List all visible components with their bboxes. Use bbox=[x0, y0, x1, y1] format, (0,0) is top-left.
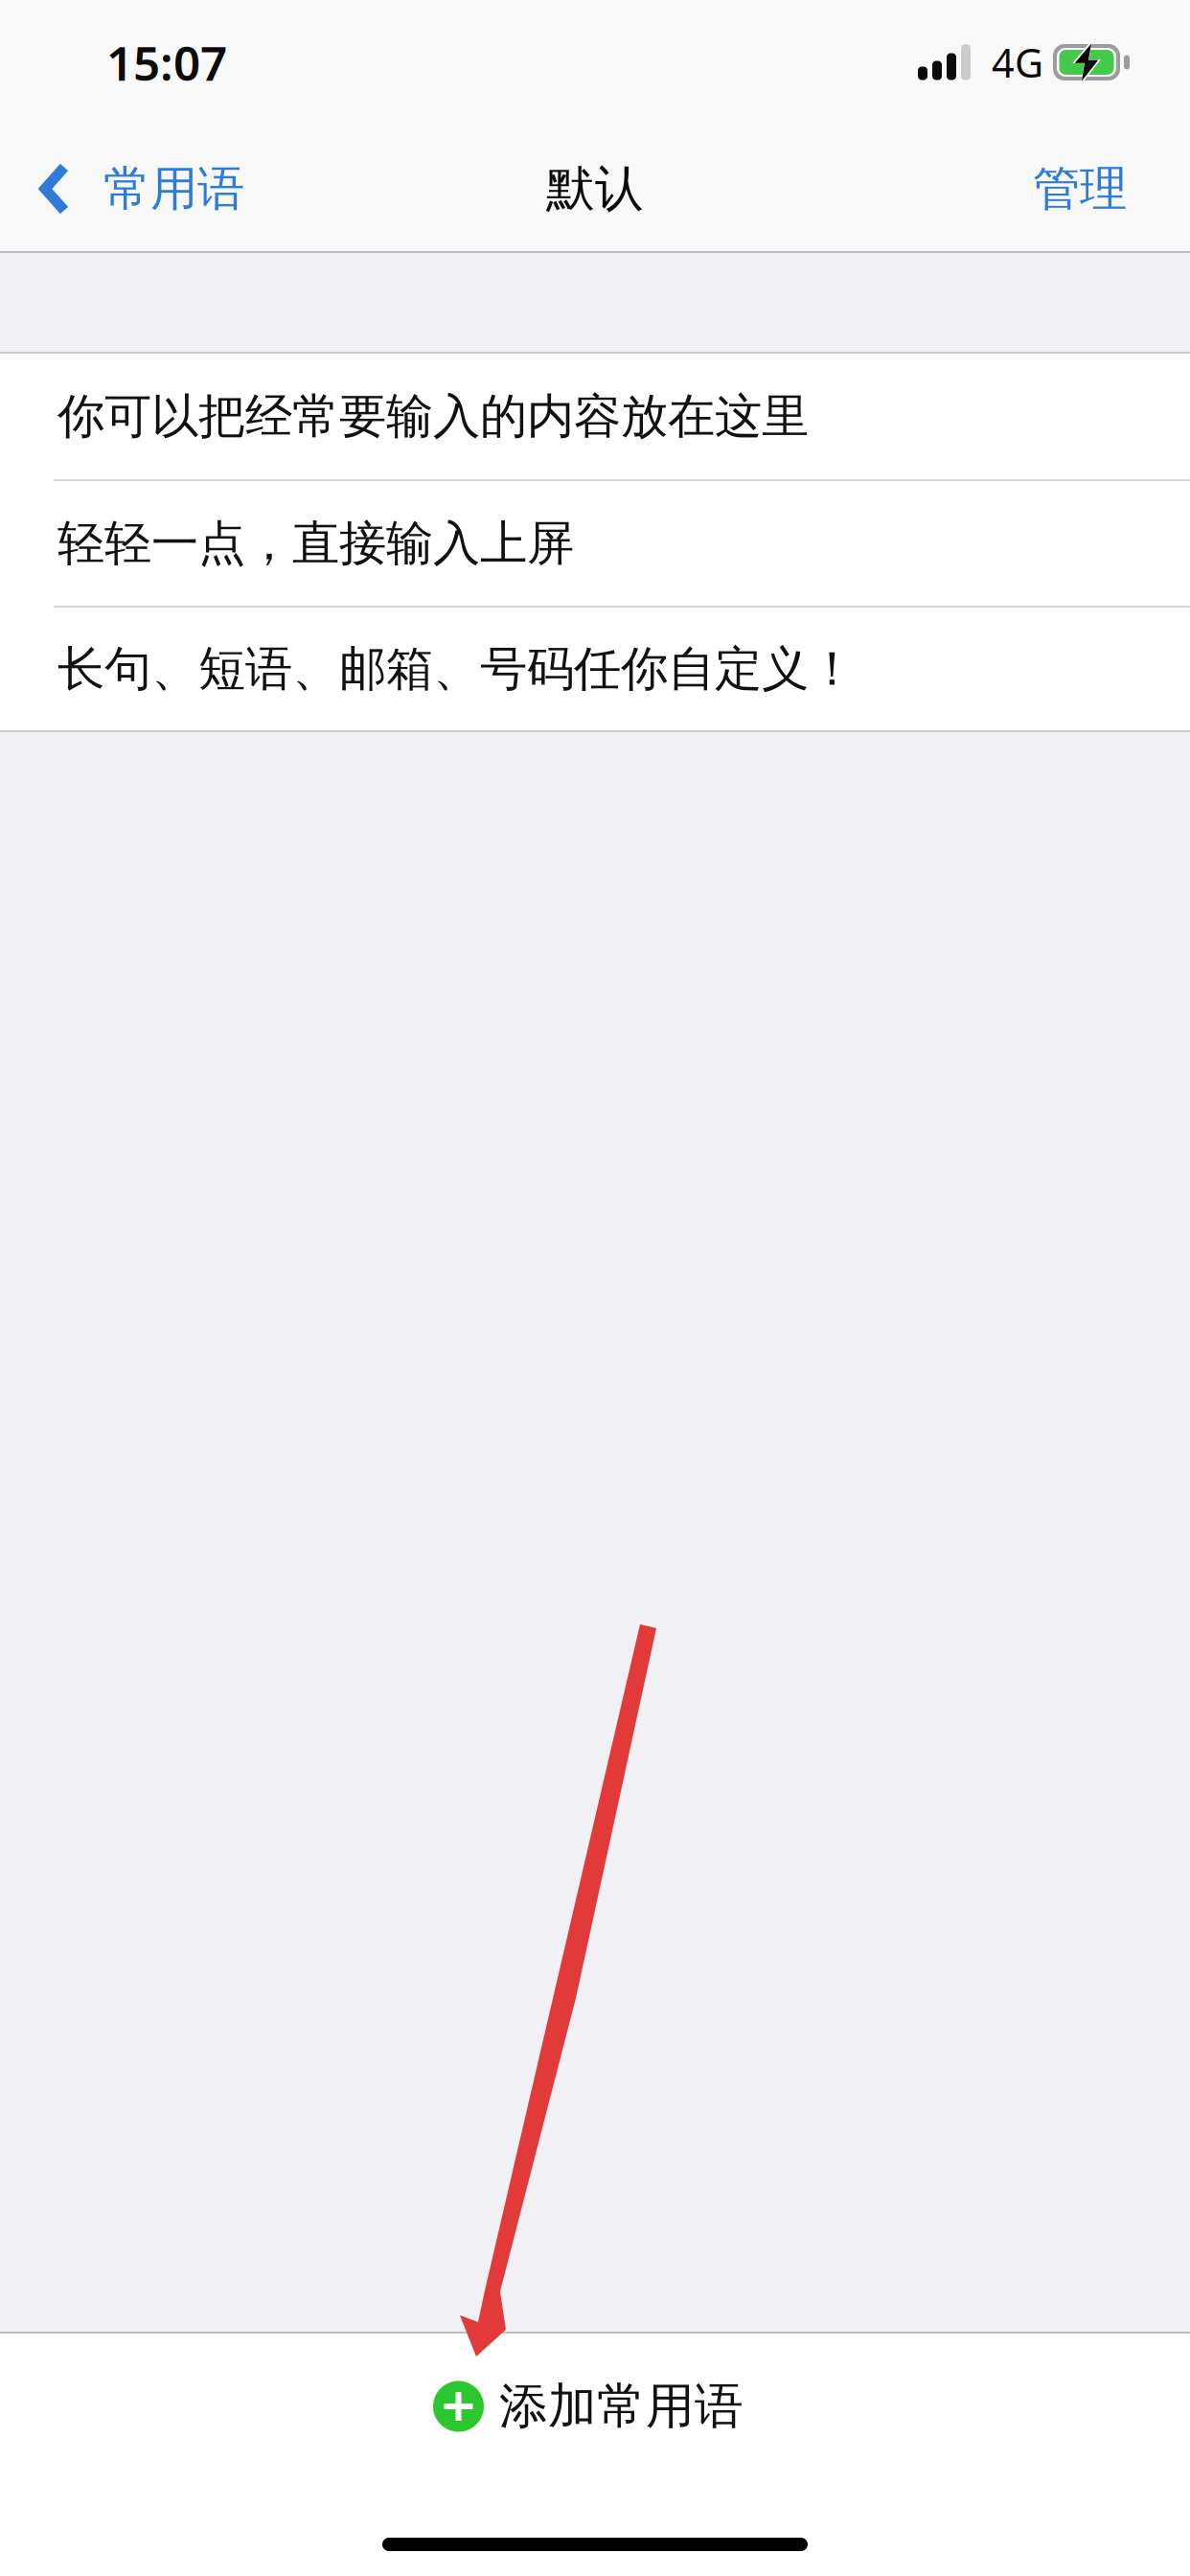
staticText: 长句、短语、邮箱、号码任你自定义！ bbox=[57, 640, 856, 698]
staticText: 默认 bbox=[546, 159, 644, 219]
button[interactable]: 管理 bbox=[998, 126, 1190, 252]
button[interactable]: 长句、短语、邮箱、号码任你自定义！ bbox=[0, 608, 1190, 730]
staticText: 4G bbox=[992, 36, 1043, 89]
button[interactable]: 返回 常用语 bbox=[0, 126, 269, 252]
button[interactable]: 添加常用语 bbox=[0, 2334, 1190, 2479]
button[interactable]: 轻轻一点，直接输入上屏 bbox=[0, 481, 1190, 608]
staticText: 你可以把经常要输入的内容放在这里 bbox=[57, 387, 809, 445]
staticText: 常用语 bbox=[103, 160, 244, 218]
staticText: 轻轻一点，直接输入上屏 bbox=[57, 514, 574, 572]
staticText: 15:07 bbox=[106, 31, 227, 94]
staticText: 管理 bbox=[1033, 160, 1127, 218]
button[interactable]: 你可以把经常要输入的内容放在这里 bbox=[0, 354, 1190, 481]
staticText: 添加常用语 bbox=[499, 2377, 744, 2436]
